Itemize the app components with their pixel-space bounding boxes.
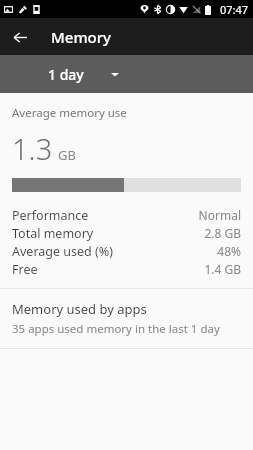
staticText: Normal xyxy=(198,207,241,223)
button[interactable]: 1 day xyxy=(0,55,253,93)
staticText: 1 day xyxy=(48,65,84,84)
staticText: 2.8 GB xyxy=(204,225,241,241)
staticText: Average used (%) xyxy=(12,243,217,260)
staticText: Memory xyxy=(51,27,112,47)
staticText: GB xyxy=(58,146,76,164)
button[interactable]: Memory used by apps xyxy=(0,289,253,348)
staticText: 35 apps used memory in the last 1 day xyxy=(12,321,220,337)
staticText: Memory used by apps xyxy=(12,300,147,318)
button[interactable]: Navigate up xyxy=(6,23,34,51)
staticText: Total memory xyxy=(12,225,204,242)
staticText: 48% xyxy=(217,243,241,259)
staticText: 07:47 xyxy=(220,2,249,17)
staticText: 1.4 GB xyxy=(204,261,241,277)
staticText: Performance xyxy=(12,207,198,224)
staticText: Average memory use xyxy=(12,105,127,121)
staticText: 1.3 xyxy=(12,129,53,168)
staticText: Free xyxy=(12,261,204,278)
